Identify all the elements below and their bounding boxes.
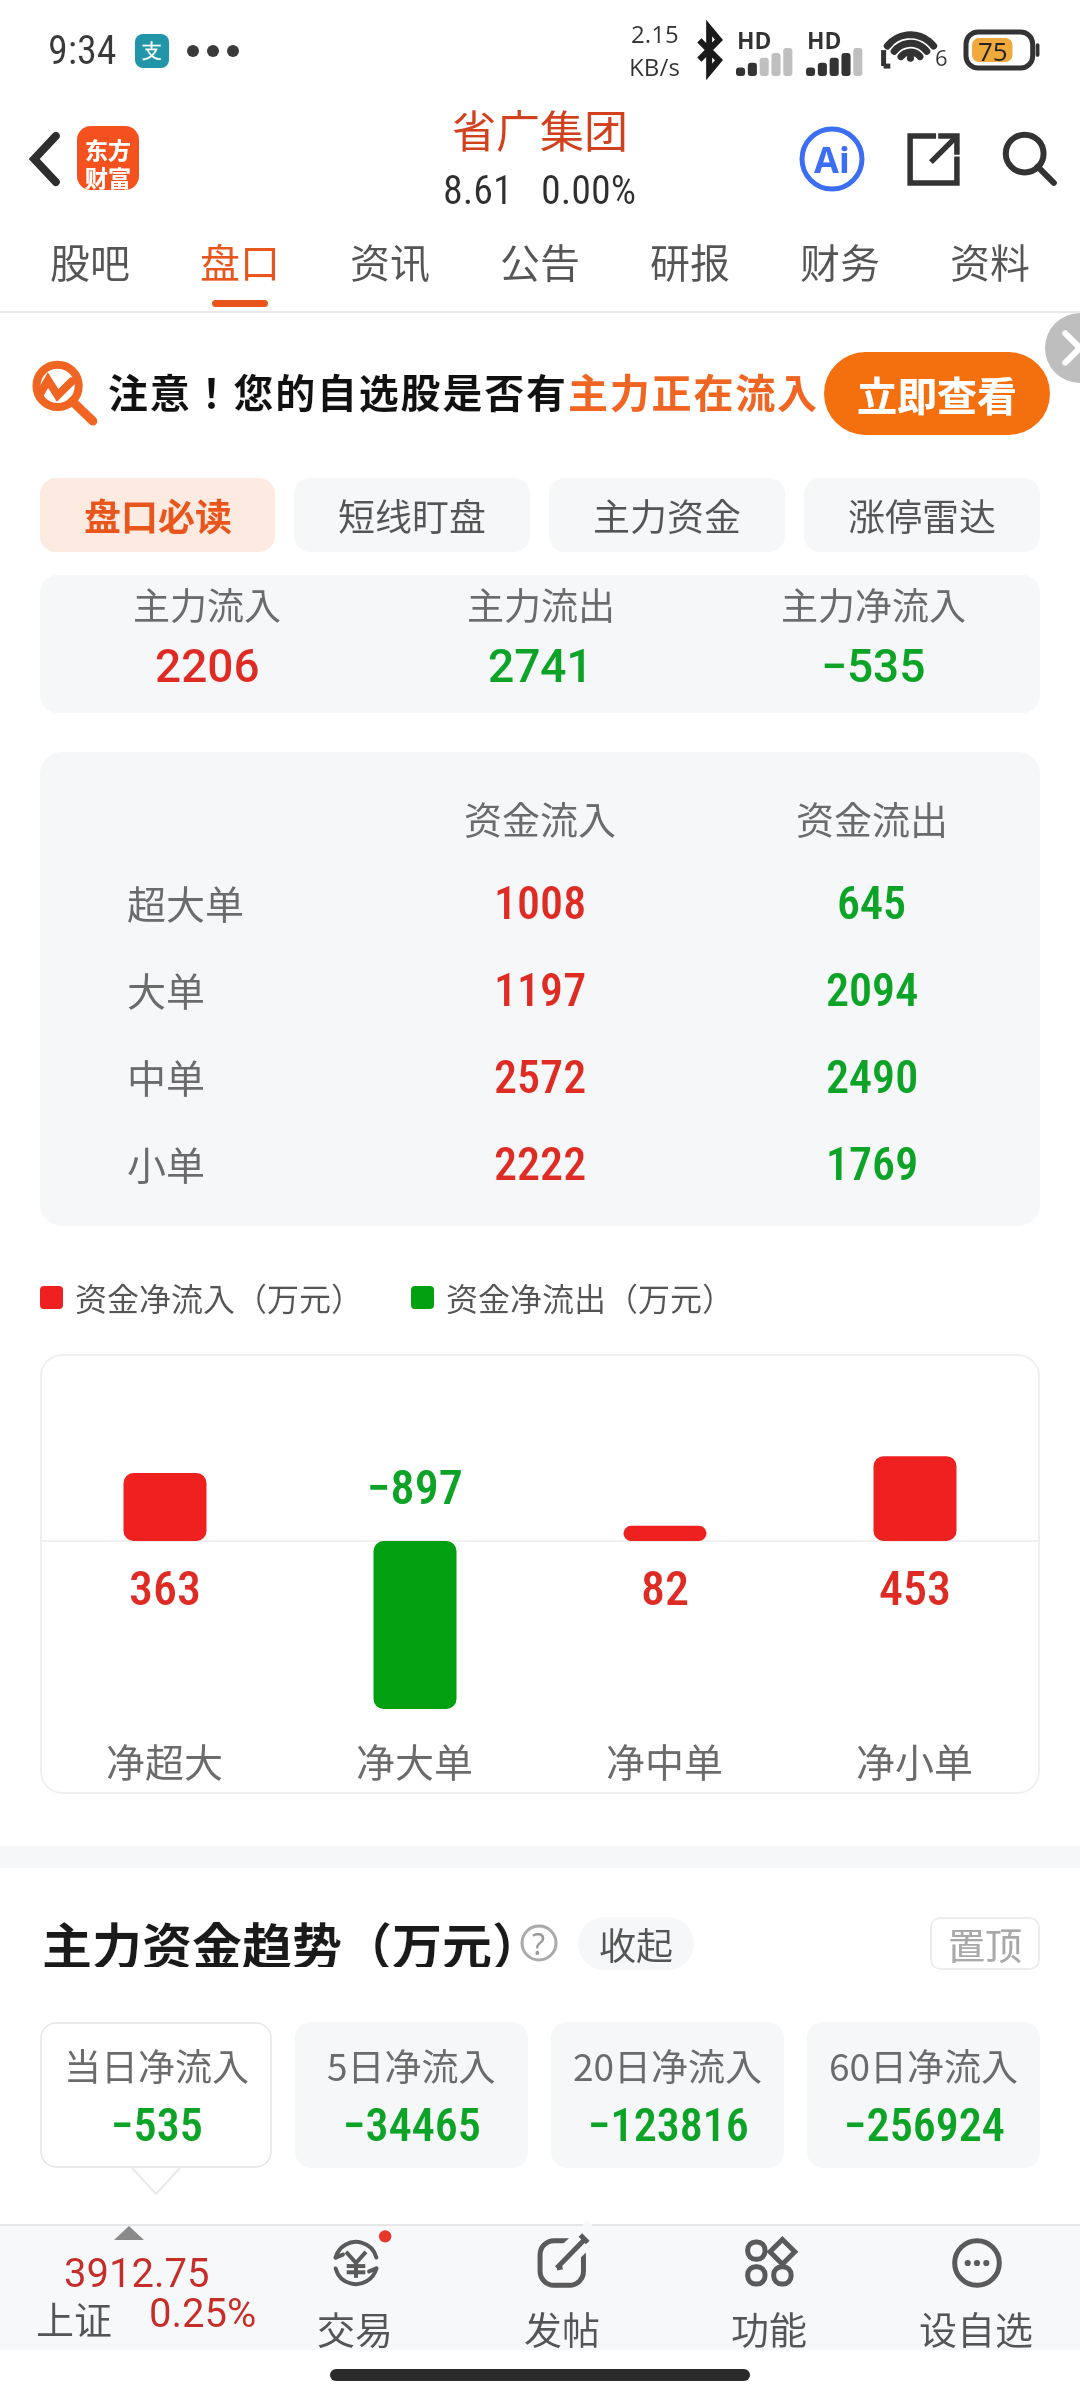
- button[interactable]: 60日净流入: [807, 2022, 1040, 2168]
- staticText: 公告: [500, 232, 580, 290]
- staticText: 0.25%: [149, 2290, 257, 2337]
- staticText: 净超大: [106, 1732, 224, 1788]
- staticText: 盘口: [200, 232, 280, 290]
- button[interactable]: 立即查看: [824, 352, 1050, 435]
- staticText: 净小单: [856, 1732, 974, 1788]
- staticText: 盘口必读: [84, 488, 232, 542]
- staticText: 股吧: [50, 232, 130, 290]
- staticText: 置顶: [948, 1917, 1022, 1970]
- staticText: 9:34: [48, 27, 117, 74]
- staticText: 超大单: [127, 874, 245, 930]
- staticText: 0.00%: [541, 167, 637, 214]
- staticText: 2572: [494, 1050, 587, 1104]
- staticText: 发帖: [524, 2300, 601, 2355]
- staticText: 1197: [494, 963, 587, 1017]
- button[interactable]: 盘口必读: [40, 478, 275, 552]
- staticText: HD: [737, 24, 772, 55]
- staticText: 2.15: [631, 17, 679, 50]
- staticText: 6: [935, 42, 948, 72]
- staticText: 主力流出: [467, 577, 615, 631]
- staticText: 东方: [85, 132, 131, 165]
- button[interactable]: 盘口: [196, 218, 284, 307]
- staticText: −535: [111, 2098, 203, 2152]
- staticText: 2222: [494, 1137, 587, 1191]
- button[interactable]: 资料: [946, 218, 1034, 307]
- staticText: 1769: [826, 1137, 919, 1191]
- staticText: 1008: [494, 876, 587, 930]
- button[interactable]: AI assistant: [792, 119, 872, 199]
- staticText: 2206: [155, 639, 260, 693]
- staticText: 20日净流入: [573, 2038, 763, 2092]
- button[interactable]: 资讯: [346, 218, 434, 307]
- staticText: 2094: [826, 963, 919, 1017]
- staticText: 当日净流入: [64, 2038, 249, 2092]
- staticText: 小单: [127, 1135, 206, 1191]
- staticText: 主力资金: [593, 488, 741, 542]
- button[interactable]: Share: [895, 121, 971, 197]
- staticText: 设自选: [919, 2300, 1034, 2355]
- staticText: 研报: [650, 232, 730, 290]
- staticText: 注意！您的自选股是否有: [108, 362, 568, 420]
- staticText: 资金净流入（万元）: [75, 1274, 364, 1320]
- button[interactable]: Search: [987, 117, 1071, 201]
- staticText: KB/s: [629, 50, 680, 83]
- staticText: 财务: [800, 232, 880, 290]
- button[interactable]: 20日净流入: [551, 2022, 784, 2168]
- staticText: 主力正在流入: [568, 362, 819, 420]
- button[interactable]: 当日净流入: [40, 2022, 272, 2168]
- staticText: Ai: [814, 135, 850, 184]
- button[interactable]: East Money home: [77, 126, 139, 190]
- staticText: ?: [532, 1923, 546, 1964]
- button[interactable]: 涨停雷达: [804, 478, 1040, 552]
- staticText: 省广集团: [452, 97, 628, 161]
- staticText: 资讯: [350, 232, 430, 290]
- staticText: −897: [367, 1459, 463, 1515]
- staticText: 净中单: [606, 1732, 724, 1788]
- staticText: 363: [129, 1560, 202, 1616]
- staticText: 功能: [731, 2300, 808, 2355]
- staticText: 8.61: [443, 167, 513, 214]
- button[interactable]: 短线盯盘: [294, 478, 530, 552]
- button[interactable]: 股吧: [46, 218, 134, 307]
- button[interactable]: 收起: [578, 1917, 694, 1970]
- staticText: 453: [879, 1560, 952, 1616]
- staticText: 资料: [950, 232, 1030, 290]
- button[interactable]: 设自选: [873, 2226, 1080, 2350]
- staticText: 交易: [317, 2300, 394, 2355]
- button[interactable]: 公告: [496, 218, 584, 307]
- staticText: 立即查看: [857, 365, 1017, 423]
- staticText: 5日净流入: [327, 2038, 496, 2092]
- button[interactable]: Help: [512, 1916, 566, 1970]
- button[interactable]: Close banner: [1045, 313, 1080, 383]
- staticText: 60日净流入: [829, 2038, 1019, 2092]
- staticText: 中单: [127, 1048, 206, 1104]
- button[interactable]: 5日净流入: [295, 2022, 528, 2168]
- button[interactable]: Back: [0, 109, 90, 209]
- staticText: 75: [978, 33, 1008, 68]
- staticText: 收起: [599, 1917, 673, 1970]
- staticText: 资金流出: [796, 790, 949, 845]
- staticText: 短线盯盘: [338, 488, 486, 542]
- staticText: 支: [142, 39, 162, 64]
- staticText: 2490: [826, 1050, 919, 1104]
- button[interactable]: 研报: [646, 218, 734, 307]
- staticText: 涨停雷达: [848, 488, 996, 542]
- staticText: HD: [807, 24, 842, 55]
- staticText: −256924: [844, 2098, 1005, 2152]
- staticText: 3912.75: [64, 2250, 210, 2297]
- staticText: 2741: [488, 639, 593, 693]
- button[interactable]: 主力资金: [549, 478, 785, 552]
- staticText: 净大单: [356, 1732, 474, 1788]
- staticText: −34465: [343, 2098, 481, 2152]
- button[interactable]: 财务: [796, 218, 884, 307]
- staticText: 上证: [36, 2290, 113, 2345]
- button[interactable]: 功能: [666, 2226, 873, 2350]
- staticText: 主力资金趋势（万元）: [42, 1907, 542, 1967]
- button[interactable]: 3912.75: [0, 2226, 252, 2350]
- button[interactable]: 置顶: [930, 1917, 1040, 1970]
- staticText: −535: [821, 639, 926, 693]
- button[interactable]: 交易: [252, 2226, 459, 2350]
- button[interactable]: 发帖: [459, 2226, 666, 2350]
- staticText: 主力净流入: [781, 577, 966, 631]
- staticText: 大单: [127, 961, 206, 1017]
